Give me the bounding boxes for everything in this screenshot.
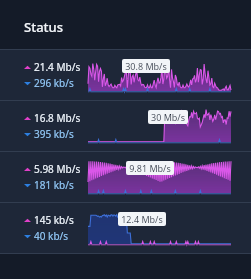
staticText: 30 Mb/s: [151, 111, 185, 123]
staticText: 16.8 Mb/s: [34, 111, 81, 125]
button[interactable]: 21.4 Mb/s: [0, 50, 251, 100]
button[interactable]: 5.98 Mb/s: [0, 152, 251, 202]
staticText: 21.4 Mb/s: [34, 60, 81, 74]
staticText: 30.8 Mb/s: [125, 60, 167, 72]
staticText: 395 kb/s: [34, 127, 74, 141]
staticText: 12.4 Mb/s: [121, 213, 163, 225]
staticText: 145 kb/s: [34, 213, 74, 227]
staticText: 9.81 Mb/s: [129, 162, 171, 174]
staticText: 5.98 Mb/s: [34, 162, 81, 176]
button[interactable]: 145 kb/s: [0, 203, 251, 253]
staticText: 181 kb/s: [34, 178, 74, 192]
staticText: 40 kb/s: [34, 229, 69, 243]
staticText: Status: [24, 18, 64, 36]
button[interactable]: 16.8 Mb/s: [0, 101, 251, 151]
staticText: 296 kb/s: [34, 76, 74, 90]
